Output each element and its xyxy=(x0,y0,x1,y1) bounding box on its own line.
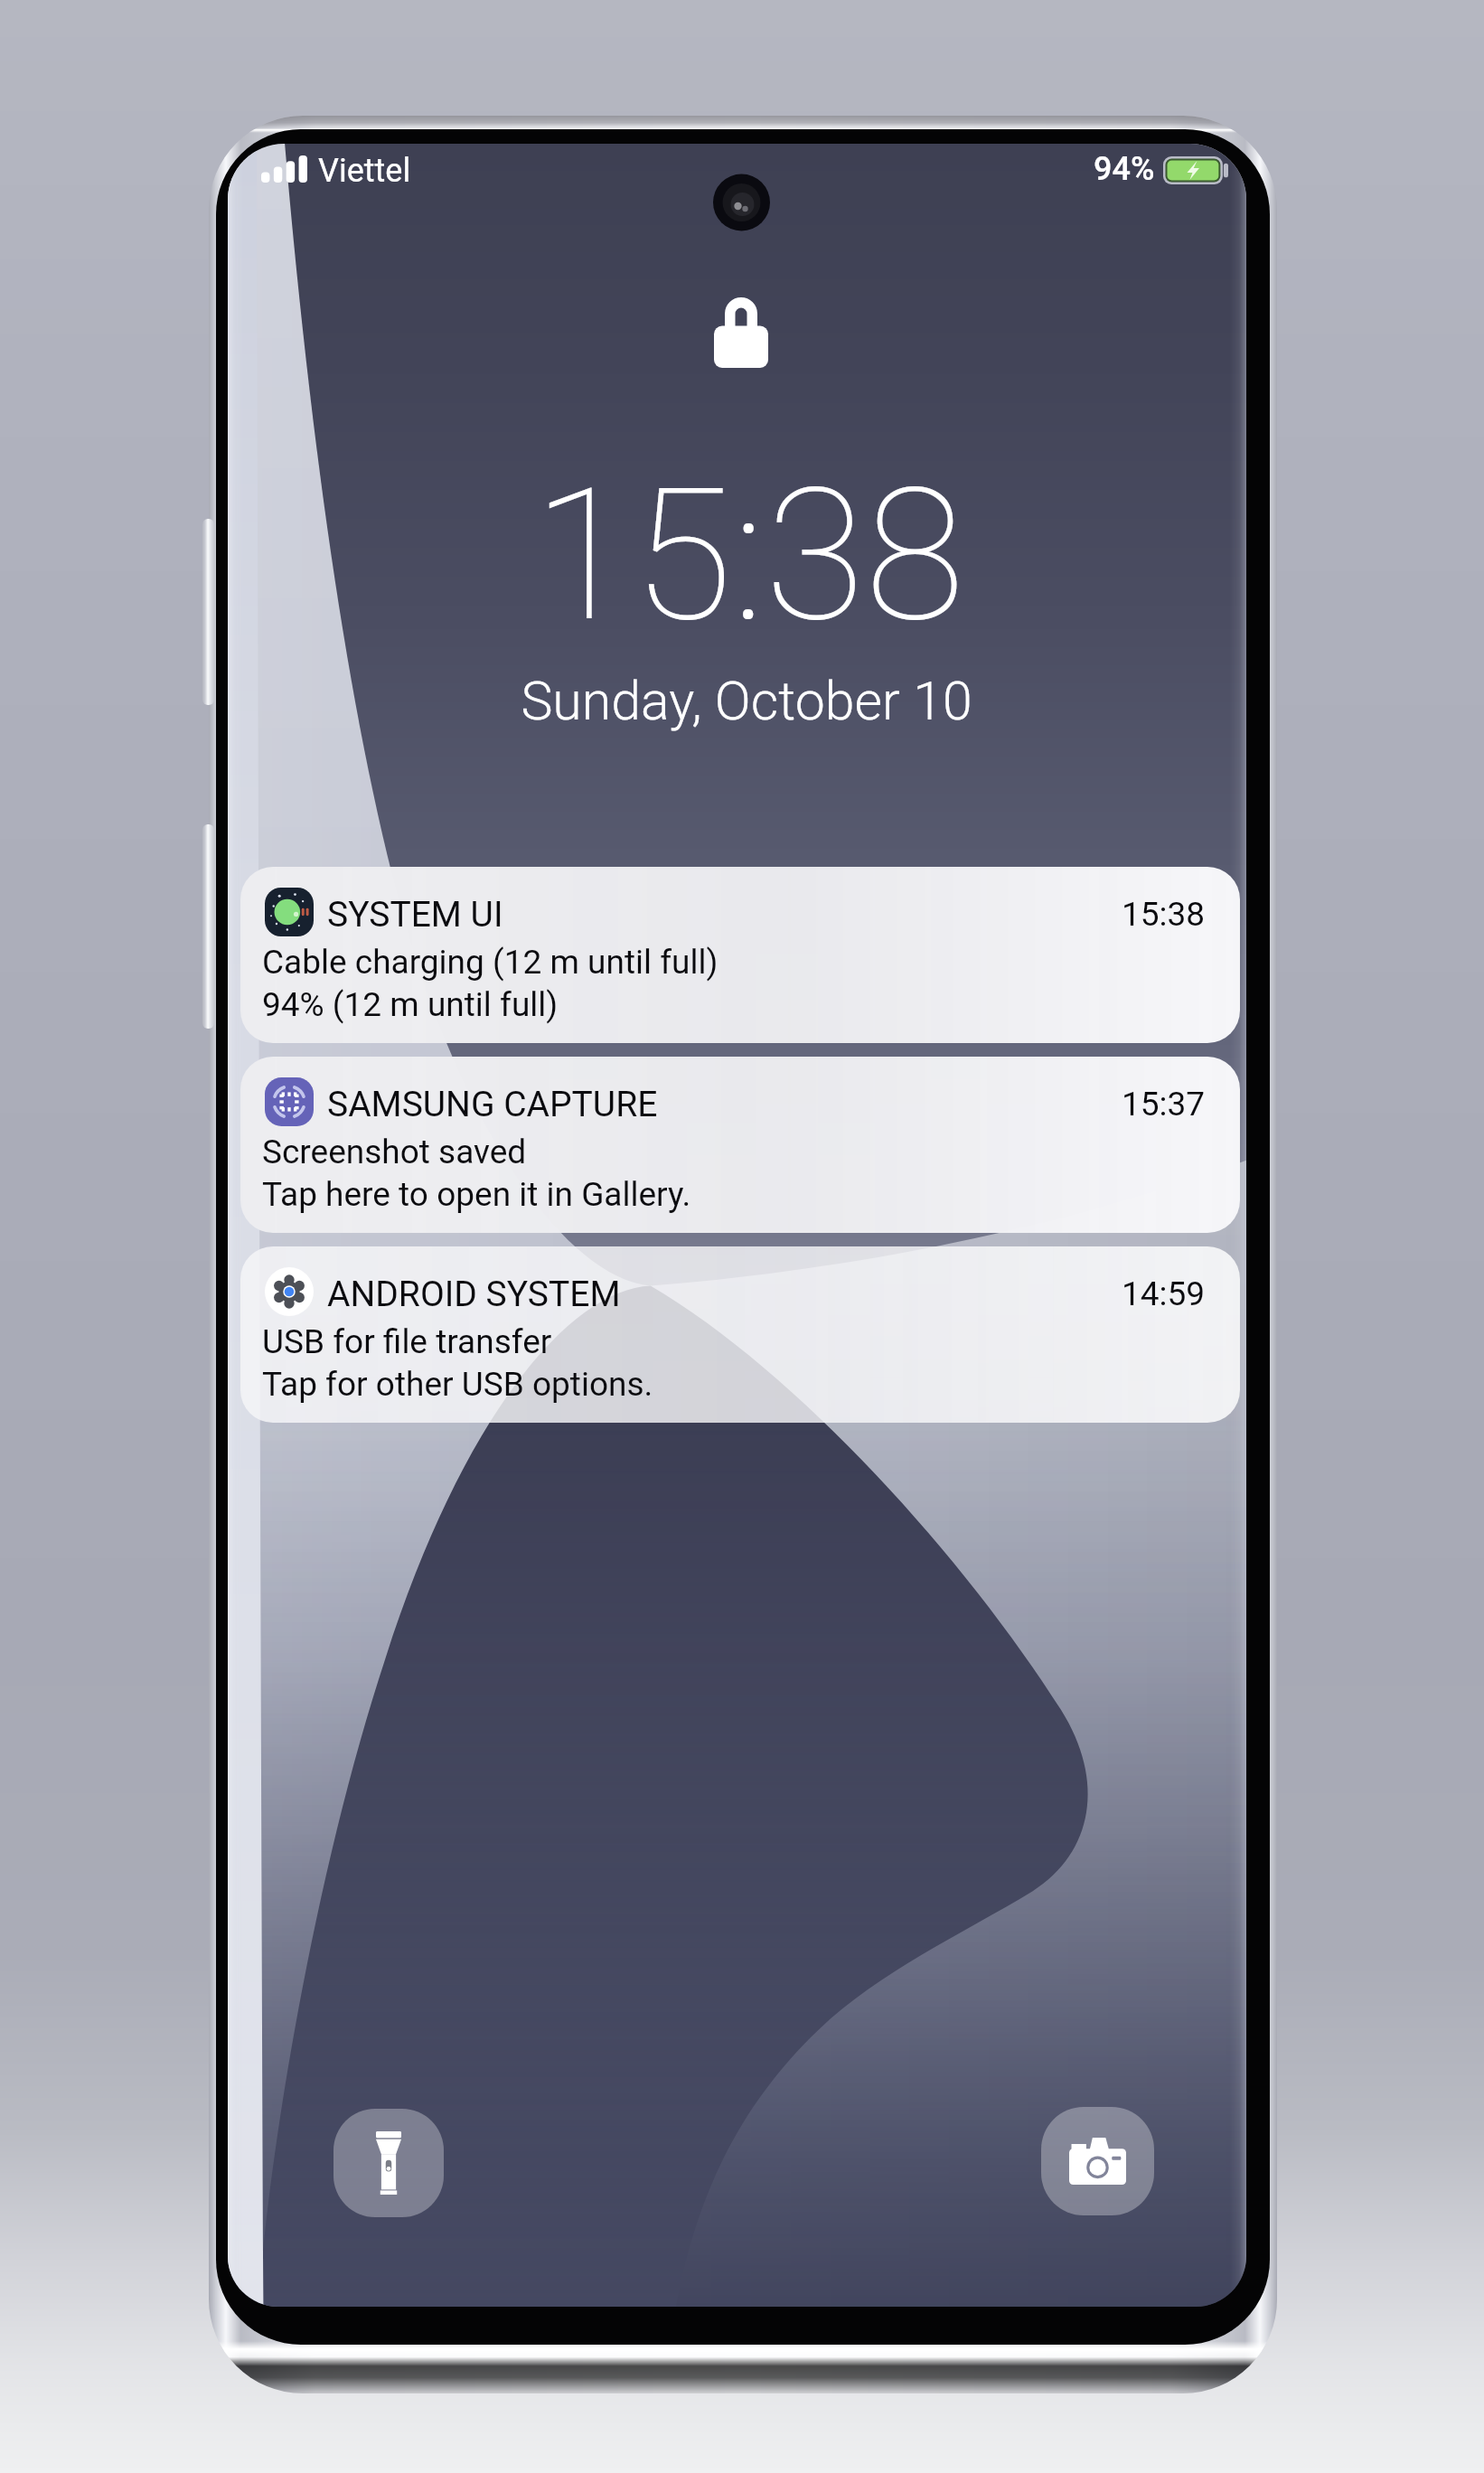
staticText: Screenshot saved xyxy=(262,1133,527,1171)
staticText: ANDROID SYSTEM xyxy=(327,1274,621,1315)
staticText: 15:38 xyxy=(532,449,965,663)
button[interactable]: ANDROID SYSTEM xyxy=(240,1246,1240,1423)
button[interactable]: SAMSUNG CAPTURE xyxy=(240,1057,1240,1233)
staticText: 14:59 xyxy=(1122,1274,1206,1313)
staticText: SYSTEM UI xyxy=(327,894,503,936)
staticText: Viettel xyxy=(318,152,411,190)
button[interactable]: Flashlight xyxy=(333,2109,444,2217)
staticText: Sunday, October 10 xyxy=(521,670,972,732)
staticText: SAMSUNG CAPTURE xyxy=(327,1084,658,1125)
staticText: 94% xyxy=(1094,150,1155,188)
staticText: Tap here to open it in Gallery. xyxy=(262,1175,691,1214)
staticText: 15:38 xyxy=(1122,895,1206,934)
staticText: Cable charging (12 m until full) xyxy=(262,943,719,982)
button[interactable]: Camera xyxy=(1041,2107,1154,2215)
staticText: USB for file transfer xyxy=(262,1322,552,1361)
button[interactable]: Unlock xyxy=(714,297,768,368)
staticText: 15:37 xyxy=(1122,1085,1206,1124)
staticText: 94% (12 m until full) xyxy=(262,985,559,1024)
button[interactable]: SYSTEM UI xyxy=(240,867,1240,1043)
staticText: Tap for other USB options. xyxy=(262,1365,653,1404)
